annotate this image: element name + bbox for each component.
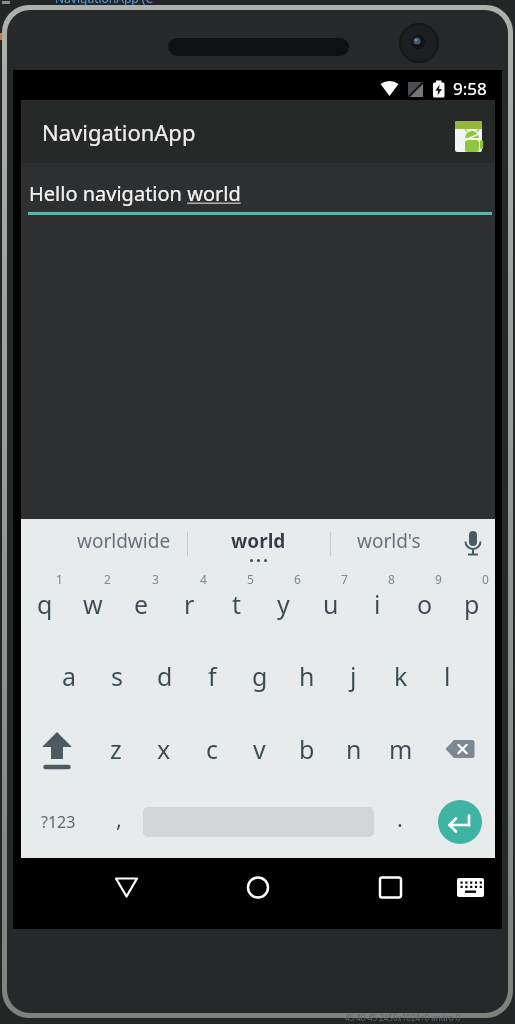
staticText: 45 40-45 2456x1024+0 andro 0: [345, 1012, 461, 1023]
button[interactable]: f: [189, 640, 236, 712]
staticText: f: [208, 659, 217, 693]
button[interactable]: h: [283, 640, 330, 712]
staticText: t: [232, 587, 242, 621]
staticText: p: [464, 587, 480, 621]
button[interactable]: k: [377, 640, 424, 712]
staticText: NavigationApp (C: [55, 0, 153, 6]
button[interactable]: ,: [95, 785, 142, 858]
staticText: d: [157, 659, 173, 693]
staticText: j: [350, 659, 357, 693]
staticText: w: [83, 587, 103, 621]
staticText: h: [299, 659, 315, 693]
button[interactable]: [238, 868, 278, 908]
button[interactable]: t: [213, 568, 260, 640]
staticText: q: [37, 587, 53, 621]
button[interactable]: v: [236, 712, 283, 785]
staticText: 0: [482, 571, 489, 587]
button[interactable]: u: [307, 568, 354, 640]
staticText: n: [346, 732, 362, 766]
button[interactable]: p: [448, 568, 495, 640]
button[interactable]: i: [354, 568, 401, 640]
button[interactable]: g: [236, 640, 283, 712]
staticText: o: [417, 587, 433, 621]
staticText: c: [206, 732, 219, 766]
staticText: 3: [152, 571, 159, 587]
button[interactable]: q: [21, 568, 69, 640]
staticText: e: [134, 587, 149, 621]
button[interactable]: world: [231, 528, 286, 554]
staticText: 4: [200, 571, 207, 587]
button[interactable]: .: [375, 785, 424, 858]
button[interactable]: c: [188, 712, 236, 785]
button[interactable]: [21, 712, 92, 785]
staticText: z: [110, 732, 122, 766]
button[interactable]: worldwide: [77, 528, 171, 554]
staticText: s: [111, 659, 123, 693]
button[interactable]: s: [93, 640, 141, 712]
staticText: i: [374, 587, 381, 621]
button[interactable]: y: [260, 568, 307, 640]
button[interactable]: a: [45, 640, 93, 712]
staticText: b: [299, 732, 315, 766]
button[interactable]: [106, 868, 146, 908]
button[interactable]: o: [401, 568, 448, 640]
button[interactable]: [370, 868, 410, 908]
staticText: .: [397, 803, 403, 833]
button[interactable]: n: [330, 712, 377, 785]
button[interactable]: m: [377, 712, 424, 785]
button[interactable]: [451, 868, 491, 908]
staticText: 8: [388, 571, 395, 587]
button[interactable]: [424, 712, 495, 785]
button[interactable]: b: [283, 712, 330, 785]
staticText: r: [184, 587, 195, 621]
staticText: y: [277, 587, 290, 621]
staticText: NavigationApp: [42, 117, 196, 147]
button[interactable]: ?123: [21, 785, 95, 858]
button[interactable]: l: [424, 640, 471, 712]
staticText: u: [323, 587, 339, 621]
button[interactable]: [424, 785, 495, 858]
staticText: a: [62, 659, 77, 693]
staticText: 5: [247, 571, 254, 587]
staticText: 6: [294, 571, 301, 587]
button[interactable]: j: [330, 640, 377, 712]
button[interactable]: [462, 529, 484, 559]
staticText: 2: [104, 571, 111, 587]
staticText: v: [253, 732, 266, 766]
button[interactable]: r: [165, 568, 213, 640]
button[interactable]: e: [117, 568, 165, 640]
staticText: g: [252, 659, 268, 693]
button[interactable]: d: [141, 640, 189, 712]
staticText: ,: [116, 803, 122, 833]
staticText: 7: [341, 571, 348, 587]
button[interactable]: x: [140, 712, 188, 785]
button[interactable]: world's: [357, 528, 421, 554]
button[interactable]: [142, 785, 375, 858]
button[interactable]: Hello navigation world: [29, 180, 241, 207]
staticText: m: [389, 732, 413, 766]
staticText: ?123: [41, 811, 76, 833]
staticText: k: [394, 659, 408, 693]
staticText: 1: [56, 571, 63, 587]
button[interactable]: w: [69, 568, 117, 640]
button[interactable]: z: [92, 712, 140, 785]
staticText: 9: [435, 571, 442, 587]
staticText: 9:58: [453, 77, 487, 100]
staticText: x: [157, 732, 171, 766]
staticText: l: [444, 659, 451, 693]
